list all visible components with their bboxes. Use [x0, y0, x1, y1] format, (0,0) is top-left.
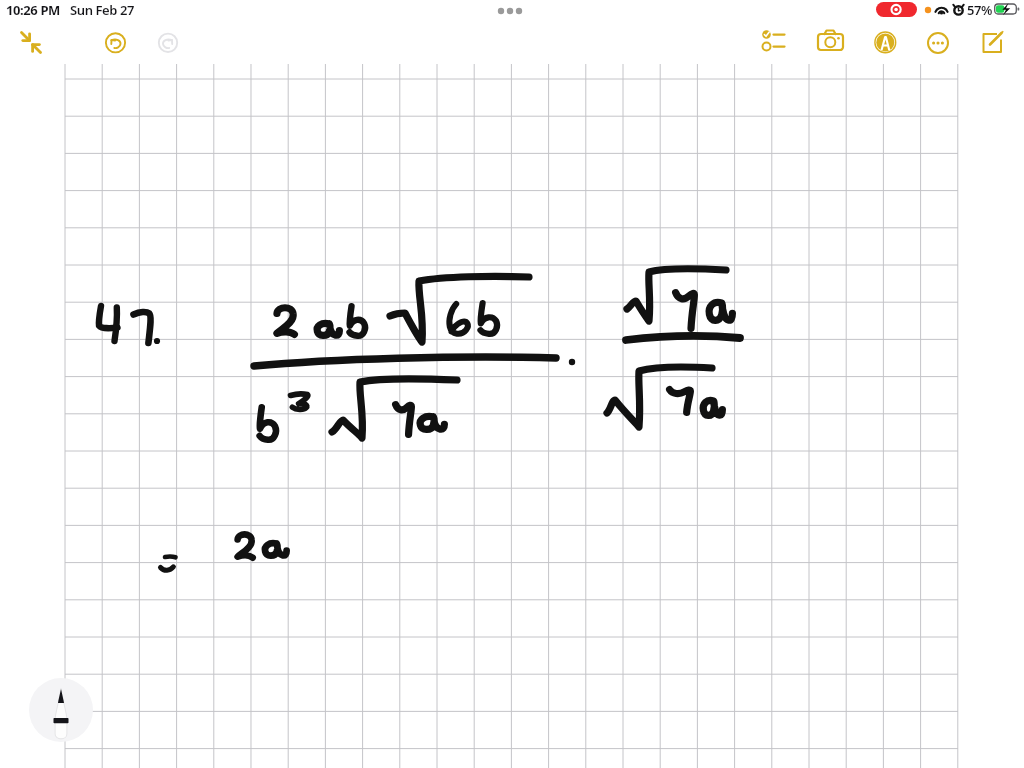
button[interactable]: Redo [151, 26, 185, 60]
button[interactable]: Compose [975, 26, 1009, 60]
button[interactable]: More [921, 26, 955, 60]
staticText: 10:26 PM [6, 1, 60, 19]
button[interactable]: Checklist [756, 26, 790, 60]
button[interactable]: Collapse [14, 26, 48, 60]
button[interactable]: Undo [98, 26, 132, 60]
button[interactable]: Pen tool [29, 678, 93, 742]
button[interactable]: Pen tool [868, 26, 902, 60]
staticText: 57% [967, 1, 993, 19]
staticText: Sun Feb 27 [70, 1, 135, 19]
button[interactable]: Camera [813, 26, 847, 60]
